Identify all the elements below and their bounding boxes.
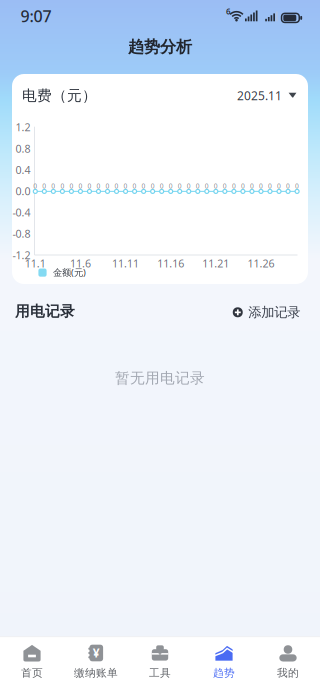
- staticText: 9:07: [20, 5, 51, 27]
- button[interactable]: 我的: [256, 644, 320, 690]
- staticText: 11.16: [157, 256, 184, 270]
- staticText: 0.4: [15, 163, 30, 177]
- staticText: 0: [42, 181, 46, 190]
- staticText: 0: [232, 181, 236, 190]
- button[interactable]: 工具: [128, 644, 192, 690]
- staticText: ¥: [93, 645, 100, 661]
- staticText: 用电记录: [15, 302, 75, 320]
- staticText: 0: [96, 181, 100, 190]
- button[interactable]: 首页: [0, 644, 64, 690]
- staticText: 0: [205, 181, 209, 190]
- staticText: 0: [259, 181, 263, 190]
- staticText: 0: [142, 181, 146, 190]
- staticText: 0: [187, 181, 191, 190]
- staticText: 0: [241, 181, 245, 190]
- staticText: 0: [105, 181, 109, 190]
- staticText: 0: [124, 181, 128, 190]
- staticText: 0: [250, 181, 254, 190]
- staticText: 暂无用电记录: [115, 369, 205, 387]
- staticText: 0: [33, 181, 37, 190]
- staticText: 添加记录: [248, 304, 300, 320]
- staticText: 缴纳账单: [74, 666, 118, 680]
- staticText: 我的: [277, 666, 299, 680]
- staticText: 0: [286, 181, 290, 190]
- staticText: 0: [223, 181, 227, 190]
- staticText: 0: [268, 181, 272, 190]
- staticText: 0: [214, 181, 218, 190]
- button[interactable]: 2025.11: [237, 87, 297, 103]
- staticText: 11.6: [70, 256, 91, 270]
- staticText: 趋势: [213, 666, 235, 680]
- staticText: 0.8: [15, 141, 30, 156]
- staticText: 0: [51, 181, 55, 190]
- staticText: 0: [277, 181, 281, 190]
- staticText: 0: [169, 181, 173, 190]
- staticText: 11.26: [247, 256, 274, 270]
- staticText: 0.0: [15, 184, 30, 198]
- staticText: 0: [78, 181, 82, 190]
- staticText: 1.2: [15, 120, 30, 134]
- staticText: 金额(元): [53, 266, 86, 278]
- staticText: 11.11: [112, 256, 139, 270]
- button[interactable]: ¥: [64, 644, 128, 690]
- staticText: 0: [160, 181, 164, 190]
- staticText: 首页: [21, 666, 43, 680]
- staticText: -0.4: [12, 205, 30, 219]
- staticText: 0: [87, 181, 91, 190]
- staticText: 0: [178, 181, 182, 190]
- staticText: 0: [69, 181, 73, 190]
- staticText: 0: [196, 181, 200, 190]
- button[interactable]: 趋势: [192, 644, 256, 690]
- staticText: 6: [226, 6, 231, 17]
- staticText: 11.1: [25, 256, 46, 270]
- staticText: -1.2: [12, 248, 30, 262]
- staticText: 0: [114, 181, 118, 190]
- staticText: 0: [151, 181, 155, 190]
- button[interactable]: 添加记录: [233, 304, 300, 320]
- staticText: -0.8: [12, 227, 30, 241]
- staticText: 2025.11: [237, 87, 282, 103]
- staticText: 电费（元）: [22, 87, 97, 105]
- staticText: 工具: [149, 666, 171, 680]
- staticText: 0: [60, 181, 64, 190]
- staticText: 0: [295, 181, 299, 190]
- staticText: 趋势分析: [128, 37, 192, 57]
- staticText: 11.21: [202, 256, 229, 270]
- staticText: 0: [133, 181, 137, 190]
